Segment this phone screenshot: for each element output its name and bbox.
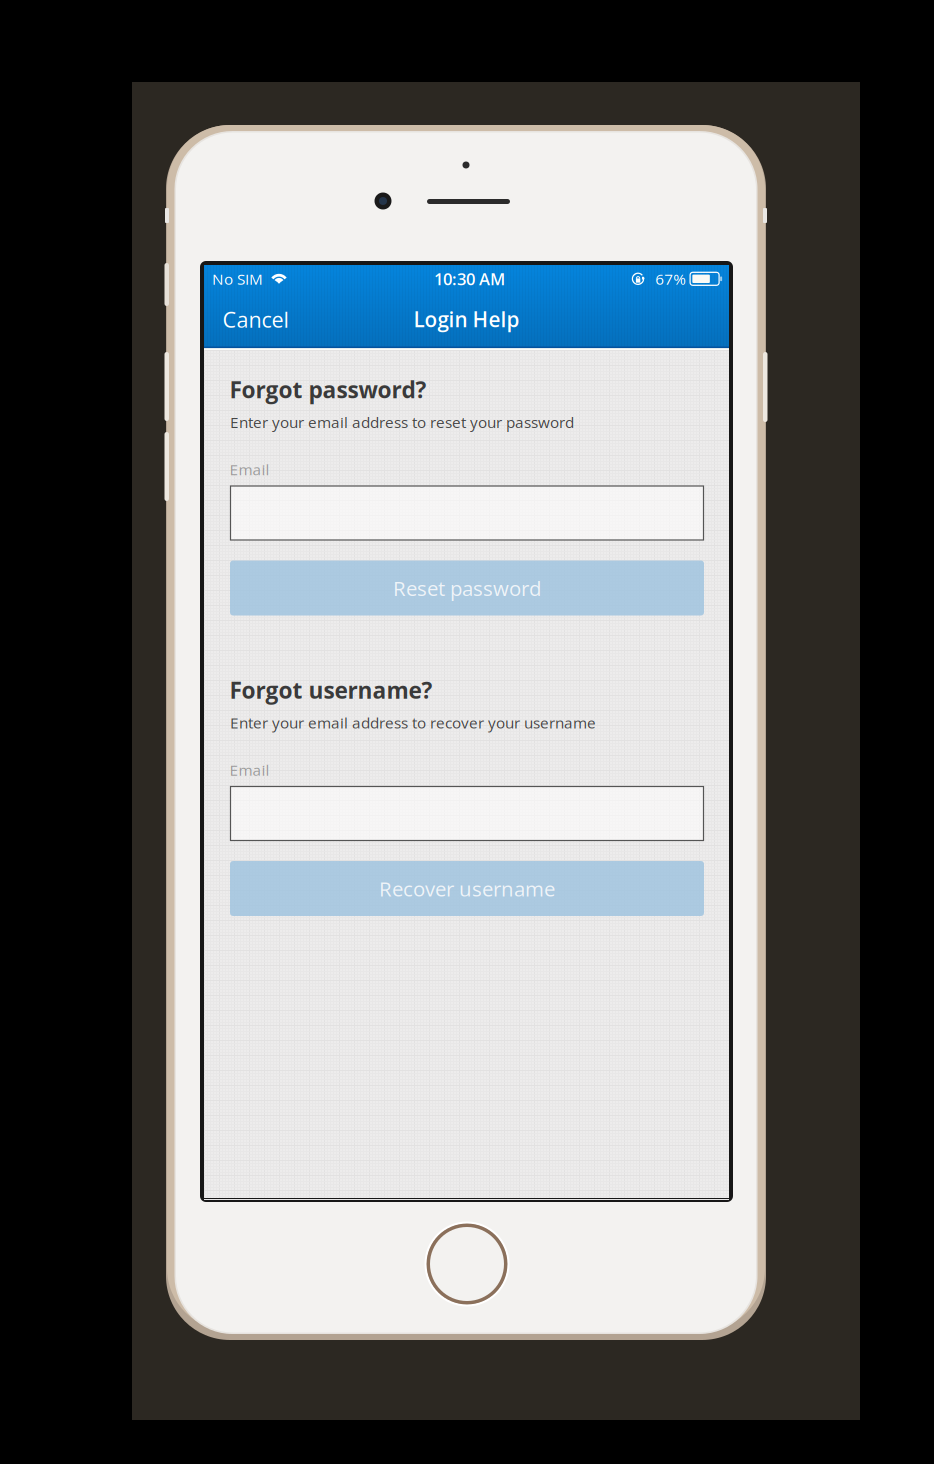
button[interactable]: Cancel — [222, 294, 318, 344]
staticText: Cancel — [222, 305, 288, 334]
staticText: Email — [230, 459, 270, 480]
staticText: Enter your email address to reset your p… — [230, 412, 574, 432]
button[interactable]: Recover username — [230, 861, 704, 916]
staticText: No SIM — [212, 268, 263, 289]
staticText: Reset password — [393, 574, 541, 602]
staticText: Recover username — [379, 875, 555, 902]
staticText: 67% — [655, 268, 686, 289]
staticText: Forgot password? — [230, 374, 427, 405]
button[interactable]: Reset password — [230, 560, 704, 615]
staticText: 10:30 AM — [434, 267, 505, 290]
staticText: Email — [230, 759, 270, 780]
staticText: Forgot username? — [230, 674, 433, 705]
staticText: Login Help — [413, 305, 519, 333]
staticText: Enter your email address to recover your… — [230, 712, 596, 733]
